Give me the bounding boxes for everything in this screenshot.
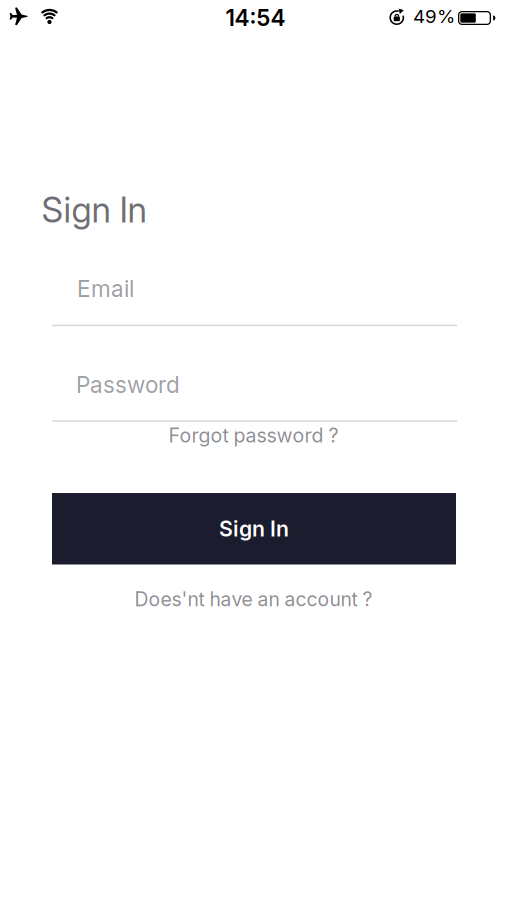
staticText: Sign In bbox=[219, 516, 289, 542]
staticText: Password bbox=[76, 371, 180, 398]
button[interactable]: Forgot password ? bbox=[168, 423, 338, 447]
button[interactable]: Does'nt have an account ? bbox=[134, 587, 372, 611]
button[interactable]: Email bbox=[52, 274, 457, 328]
staticText: Sign In bbox=[41, 189, 146, 231]
staticText: Forgot password ? bbox=[168, 423, 338, 447]
staticText: 49% bbox=[413, 5, 455, 28]
staticText: 14:54 bbox=[225, 4, 285, 31]
button[interactable]: Password bbox=[52, 370, 457, 422]
button[interactable]: Sign In bbox=[52, 493, 456, 564]
staticText: Email bbox=[77, 275, 134, 302]
staticText: Does'nt have an account ? bbox=[134, 587, 372, 611]
